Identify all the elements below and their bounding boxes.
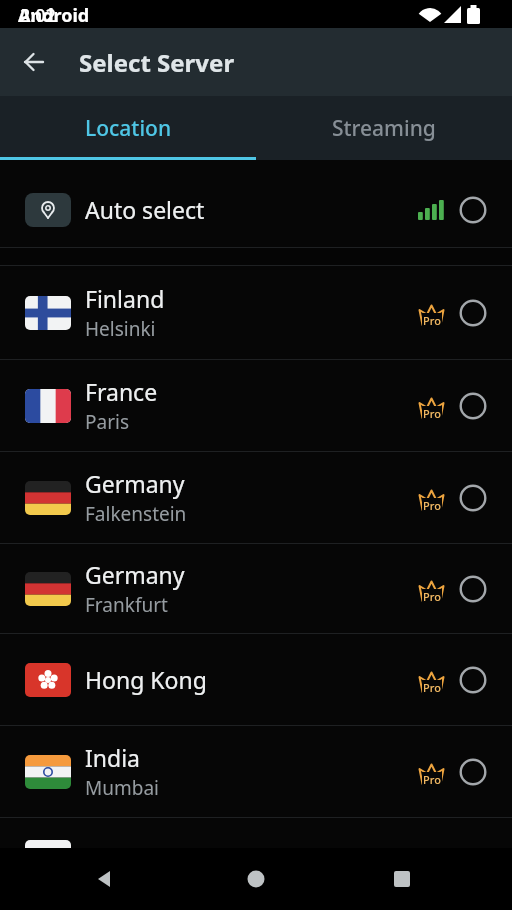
button[interactable]: Germany — [0, 452, 512, 544]
staticText: 2:02 — [20, 3, 56, 28]
button[interactable]: France — [0, 360, 512, 452]
button[interactable]: Location — [0, 96, 256, 160]
button[interactable]: Germany — [0, 544, 512, 634]
button[interactable] — [85, 859, 125, 899]
button[interactable] — [0, 818, 512, 848]
staticText: Streaming — [332, 114, 436, 143]
staticText: India — [85, 742, 140, 773]
staticText: Germany — [85, 559, 185, 590]
staticText: Germany — [85, 468, 185, 499]
staticText: Falkenstein — [85, 501, 187, 527]
staticText: Hong Kong — [85, 664, 207, 695]
staticText: France — [85, 376, 158, 407]
staticText: Mumbai — [85, 775, 159, 801]
button[interactable]: Finland — [0, 266, 512, 360]
staticText: Location — [85, 114, 172, 143]
staticText: Pro — [423, 406, 441, 421]
staticText: Paris — [85, 409, 130, 435]
staticText: Pro — [423, 498, 441, 513]
staticText: Select Server — [79, 46, 235, 79]
staticText: Android — [18, 3, 90, 28]
button[interactable]: India — [0, 726, 512, 818]
staticText: Helsinki — [85, 316, 156, 342]
staticText: Finland — [85, 283, 165, 314]
staticText: Frankfurt — [85, 592, 168, 618]
button[interactable] — [236, 859, 276, 899]
staticText: Pro — [423, 772, 441, 787]
staticText: Pro — [423, 680, 441, 695]
button[interactable]: Hong Kong — [0, 634, 512, 726]
staticText: Auto select — [85, 194, 205, 225]
staticText: Pro — [423, 589, 441, 604]
button[interactable] — [14, 42, 54, 82]
button[interactable] — [382, 859, 422, 899]
staticText: Pro — [423, 313, 441, 328]
button[interactable]: Auto select — [0, 172, 512, 247]
button[interactable]: Streaming — [256, 96, 512, 160]
